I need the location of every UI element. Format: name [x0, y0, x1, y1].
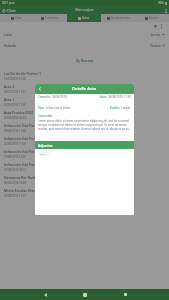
staticText: 09/08/2018 19:58	[4, 181, 26, 185]
button[interactable]: Notificaciones	[101, 14, 135, 22]
button[interactable]: Filtrar	[152, 23, 158, 29]
staticText: Estado	[4, 43, 17, 48]
staticText: 28/06/2018	[52, 95, 67, 99]
staticText: Multa Escalas Vencidas	[4, 188, 43, 193]
button[interactable]: Foto 1	[38, 151, 49, 156]
staticText: Lote	[4, 32, 12, 37]
staticText: Adjuntos	[38, 143, 53, 148]
staticText: Detalle Acta	[72, 86, 97, 92]
staticText: Infracción Vial Por Radar	[4, 149, 46, 154]
staticText: Actas	[82, 16, 90, 20]
staticText: Tipo:	[38, 106, 46, 110]
staticText: Lot De Ve De Petites 1	[4, 71, 41, 76]
button[interactable]: Chat	[0, 14, 33, 22]
button[interactable]: Infracción Vial Por Radar	[0, 146, 169, 159]
staticText: 28/09/2018 09:33	[4, 116, 26, 120]
button[interactable]: Lote	[0, 30, 169, 39]
staticText: Creación:	[38, 95, 52, 99]
button[interactable]: Buscar	[0, 56, 169, 65]
staticText: 28/08/2018 17:30	[4, 129, 26, 133]
button[interactable]: Acta Prueba 0001	[0, 107, 169, 120]
button[interactable]: Atrás	[37, 289, 53, 300]
staticText: Acta 2	[4, 84, 15, 89]
button[interactable]: Acta 2	[0, 81, 169, 94]
button[interactable]: Inicio	[77, 289, 93, 300]
staticText: Acta:	[100, 95, 108, 99]
staticText: Infracción Vial Por Radar	[4, 123, 46, 128]
button[interactable]: Actas	[67, 14, 101, 22]
button[interactable]: Volver	[35, 84, 45, 94]
staticText: Contenido:	[38, 114, 53, 118]
button[interactable]: Multa Escalas Vencidas	[0, 185, 169, 198]
staticText: Acta 1	[4, 97, 15, 102]
staticText: Creada	[121, 106, 131, 110]
staticText: 15/08/2018 08:12	[4, 168, 26, 172]
staticText: 18/10/2018 15:40	[4, 77, 26, 81]
button[interactable]: Acta 1	[0, 94, 169, 107]
staticText: Acta Prueba 0001	[4, 110, 34, 115]
button[interactable]: Ajustes	[135, 14, 169, 22]
staticText: 9:51 p.m.	[2, 1, 16, 5]
staticText: Junio	[151, 32, 161, 37]
staticText: 21/08/2018 16:45	[4, 155, 26, 159]
staticText: Foto 1	[40, 152, 47, 155]
staticText: Infracción Vial Por Radar	[4, 136, 46, 141]
staticText: Contactos	[45, 16, 59, 20]
staticText: Buscar	[81, 58, 94, 63]
button[interactable]: Lot De Ve De Petites 1	[0, 68, 169, 81]
staticText: 01/08/2018 13:27	[4, 194, 26, 198]
button[interactable]: Cuenta	[162, 7, 169, 14]
staticText: Notificaciones	[111, 16, 130, 20]
button[interactable]: Infracción Vial Por Radar	[0, 133, 169, 146]
staticText: Denuncia Por Ruidos Molestos	[4, 175, 56, 180]
staticText: Chat	[15, 16, 22, 20]
staticText: 02/10/2018 11:02	[4, 103, 26, 107]
staticText: Infracciones Viales	[46, 106, 71, 110]
staticText: 28/08/2018 17:30	[108, 95, 131, 99]
staticText: Ajustes	[149, 16, 159, 20]
staticText: Todos	[150, 43, 161, 48]
staticText: Chat	[7, 8, 16, 13]
button[interactable]: Infracción Vial Por Radar	[0, 120, 169, 133]
button[interactable]: Denuncia Por Ruidos Molestos	[0, 172, 169, 185]
staticText: Infracción Vial Por Radar	[4, 162, 46, 167]
button[interactable]: Estado	[0, 41, 169, 50]
staticText: Estado:	[110, 106, 121, 110]
button[interactable]: Más opciones	[158, 23, 164, 29]
staticText: 22/08/2018 10:05	[4, 142, 26, 146]
button[interactable]: Infracción Vial Por Radar	[0, 159, 169, 172]
staticText: 78%	[158, 1, 164, 5]
button[interactable]: Contactos	[33, 14, 67, 22]
button[interactable]: Recientes	[117, 289, 133, 300]
staticText: Mensajes	[75, 7, 94, 13]
staticText: Lorem ipsum dolor sit amet, consectetur …	[38, 119, 131, 131]
staticText: 02/10/2018 11:21	[4, 90, 26, 94]
